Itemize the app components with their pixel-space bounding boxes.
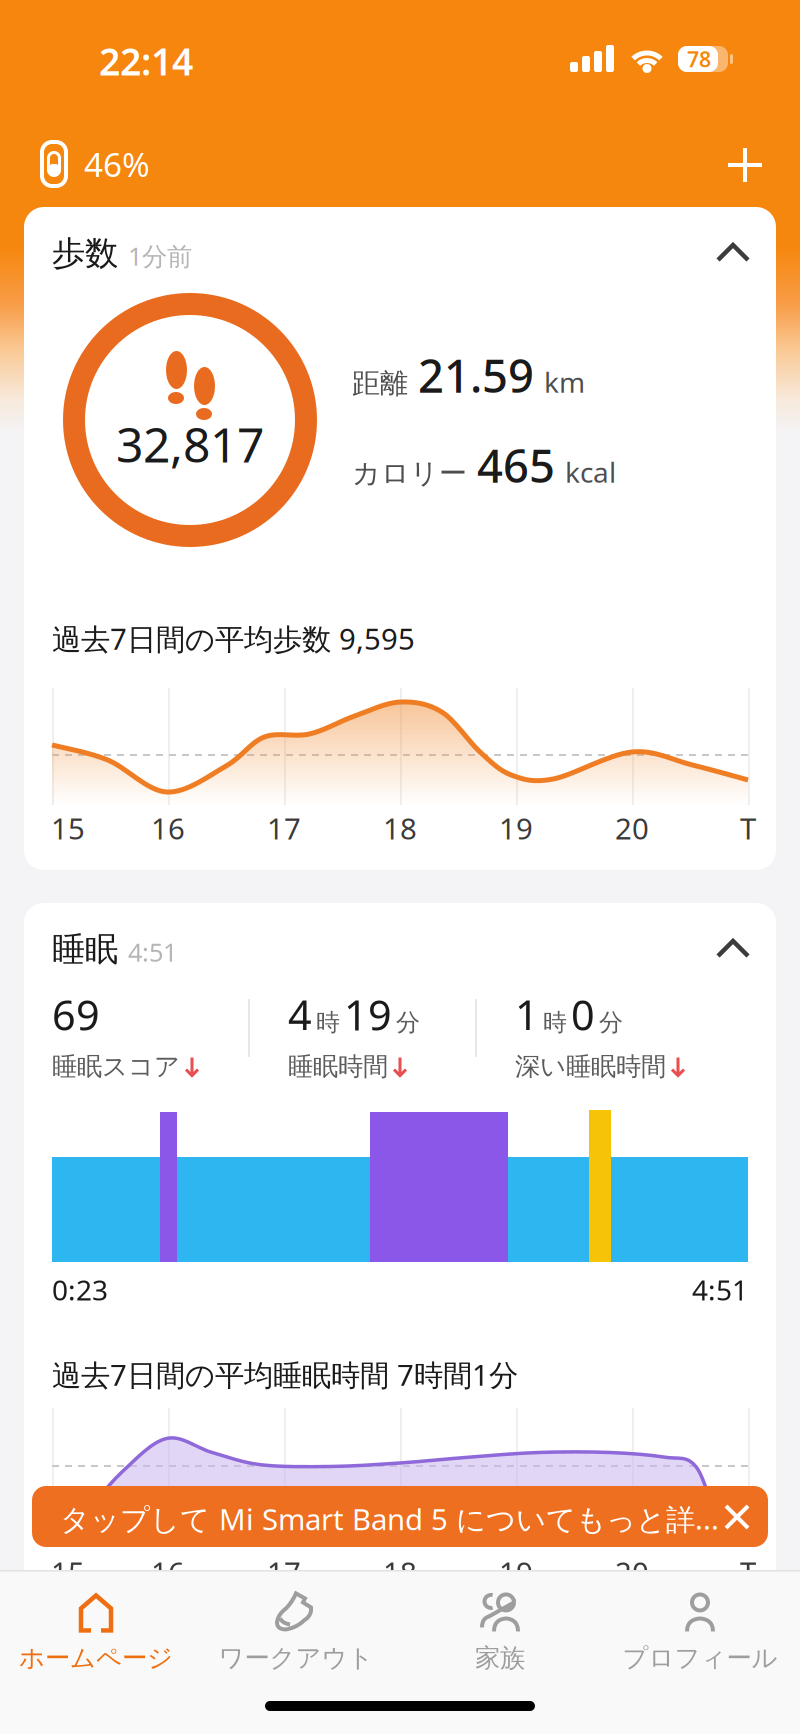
staticText: 4:51 xyxy=(692,1271,748,1308)
staticText: 睡眠スコア xyxy=(52,1051,180,1082)
button[interactable]: 家族 xyxy=(405,1590,595,1673)
staticText: 20 xyxy=(615,808,649,847)
staticText: 時 xyxy=(543,1008,567,1037)
staticText: 過去7日間の平均睡眠時間 7時間1分 xyxy=(52,1355,518,1394)
staticText: 19 xyxy=(499,1552,533,1591)
staticText: 18 xyxy=(383,808,417,847)
staticText: タップして Mi Smart Band 5 についてもっと詳し… xyxy=(60,1499,740,1538)
staticText: 16 xyxy=(151,808,185,847)
staticText: T xyxy=(740,1552,756,1591)
button[interactable] xyxy=(728,148,762,182)
staticText: 過去7日間の平均歩数 9,595 xyxy=(52,619,415,658)
staticText: 15 xyxy=(51,1552,85,1591)
button[interactable]: 睡眠 xyxy=(24,903,776,1603)
staticText: 20 xyxy=(615,1552,649,1591)
staticText: 19 xyxy=(499,808,533,847)
staticText: 21.59 xyxy=(418,345,534,405)
staticText: 69 xyxy=(52,987,100,1042)
staticText: 46% xyxy=(84,142,150,186)
staticText: 0 xyxy=(571,987,595,1042)
staticText: 分 xyxy=(599,1008,623,1037)
staticText: 歩数 xyxy=(52,233,118,274)
staticText: カロリー xyxy=(352,456,467,491)
staticText: 深い睡眠時間 xyxy=(515,1051,666,1082)
button[interactable]: 46% xyxy=(40,140,172,190)
button[interactable]: プロフィール xyxy=(605,1590,795,1673)
staticText: 18 xyxy=(383,1552,417,1591)
staticText: 32,817 xyxy=(116,412,264,476)
staticText: 15 xyxy=(51,808,85,847)
staticText: 22:14 xyxy=(99,36,193,86)
staticText: ワークアウト xyxy=(218,1642,373,1673)
staticText: 睡眠 xyxy=(52,929,118,970)
staticText: 時 xyxy=(316,1008,340,1037)
staticText: T xyxy=(740,808,756,847)
staticText: 17 xyxy=(267,1552,301,1591)
staticText: 家族 xyxy=(475,1642,525,1673)
staticText: 4:51 xyxy=(128,935,177,969)
staticText: プロフィール xyxy=(622,1642,777,1673)
button[interactable]: タップして Mi Smart Band 5 についてもっと詳し… xyxy=(32,1486,768,1547)
staticText: 19 xyxy=(344,987,392,1042)
button[interactable]: ホームページ xyxy=(1,1590,191,1673)
staticText: 睡眠時間 xyxy=(288,1051,388,1082)
staticText: 17 xyxy=(267,808,301,847)
button[interactable]: ワークアウト xyxy=(201,1590,391,1673)
staticText: 分 xyxy=(396,1008,420,1037)
staticText: 78 xyxy=(687,45,711,73)
staticText: 0:23 xyxy=(52,1271,108,1308)
staticText: 1分前 xyxy=(128,239,192,273)
staticText: 4 xyxy=(288,987,312,1042)
staticText: ホームページ xyxy=(19,1642,173,1673)
staticText: km xyxy=(544,363,585,400)
staticText: 1 xyxy=(515,987,539,1042)
staticText: 465 xyxy=(477,435,555,495)
staticText: kcal xyxy=(565,453,616,490)
staticText: 距離 xyxy=(352,366,408,401)
staticText: 16 xyxy=(151,1552,185,1591)
button[interactable]: 歩数 xyxy=(24,207,776,870)
